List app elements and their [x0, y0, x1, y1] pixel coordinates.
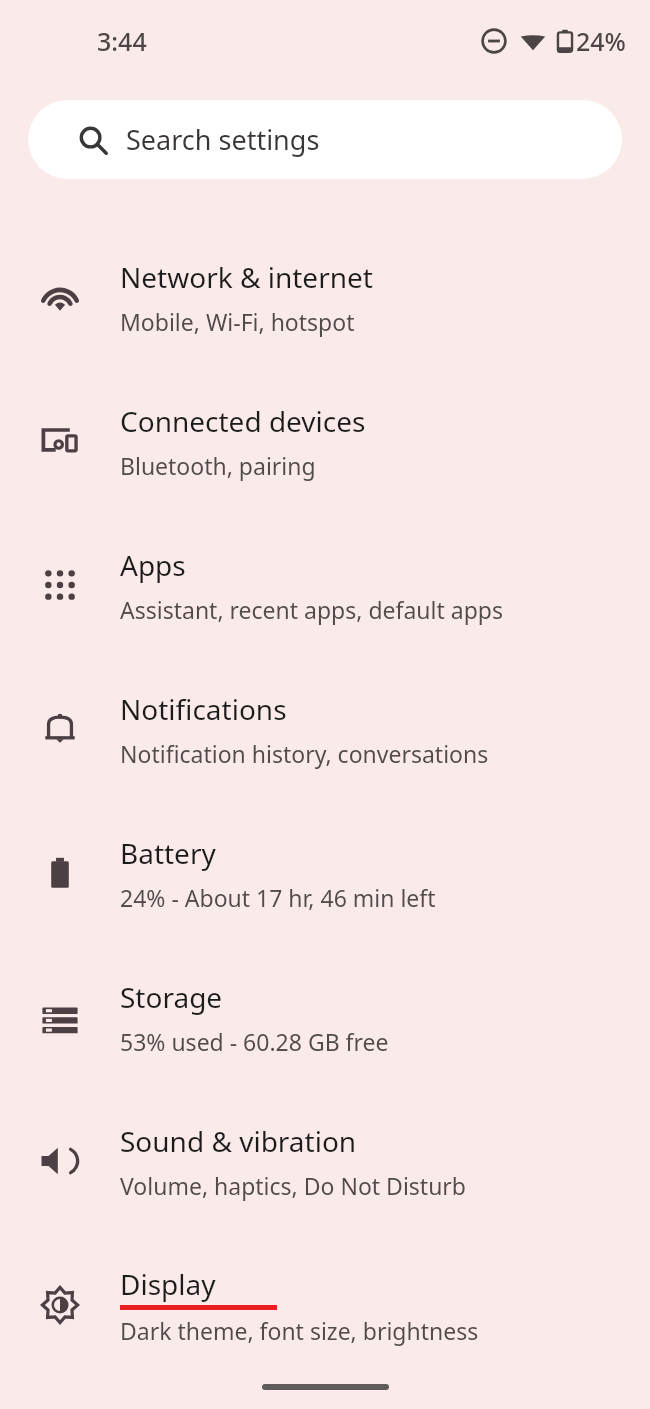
button[interactable]: Display — [0, 1233, 650, 1377]
button[interactable]: Notifications — [0, 657, 650, 801]
staticText: Volume, haptics, Do Not Disturb — [120, 1170, 466, 1201]
button[interactable]: Connected devices — [0, 369, 650, 513]
staticText: Bluetooth, pairing — [120, 450, 316, 481]
staticText: 3:44 — [97, 24, 147, 58]
staticText: Dark theme, font size, brightness — [120, 1315, 479, 1346]
button[interactable]: Battery — [0, 801, 650, 945]
staticText: Notification history, conversations — [120, 738, 489, 769]
button[interactable]: Storage — [0, 945, 650, 1089]
staticText: Connected devices — [120, 402, 366, 440]
staticText: 24% — [576, 24, 626, 58]
button[interactable]: Search settings — [28, 100, 622, 179]
staticText: 53% used - 60.28 GB free — [120, 1026, 389, 1057]
button[interactable]: Sound & vibration — [0, 1089, 650, 1233]
staticText: Sound & vibration — [120, 1122, 357, 1160]
staticText: 24% - About 17 hr, 46 min left — [120, 882, 436, 913]
staticText: Display — [120, 1265, 216, 1303]
button[interactable]: Apps — [0, 513, 650, 657]
staticText: Network & internet — [120, 258, 373, 296]
staticText: Battery — [120, 834, 216, 872]
staticText: Notifications — [120, 690, 287, 728]
staticText: Search settings — [126, 121, 320, 158]
staticText: Storage — [120, 978, 223, 1016]
staticText: Assistant, recent apps, default apps — [120, 594, 503, 625]
staticText: Apps — [120, 546, 186, 584]
button[interactable]: Network & internet — [0, 225, 650, 369]
staticText: Mobile, Wi-Fi, hotspot — [120, 306, 355, 337]
